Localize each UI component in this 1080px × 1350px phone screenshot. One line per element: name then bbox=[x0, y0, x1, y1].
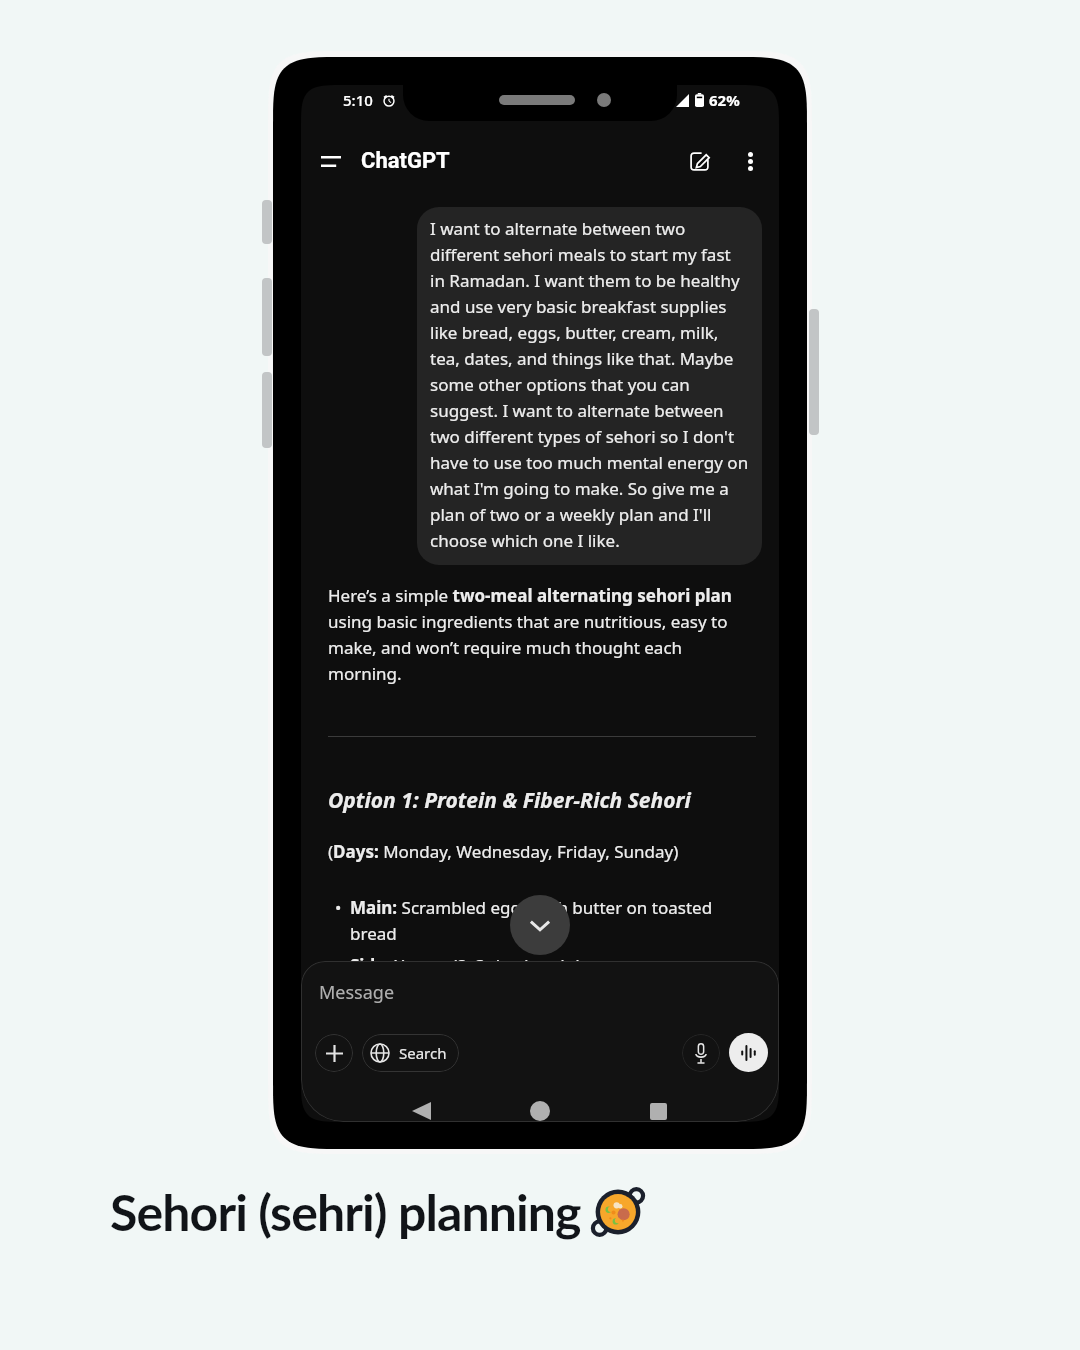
staticText: Sehori (sehri) planning bbox=[110, 1182, 581, 1242]
button[interactable]: Add attachment bbox=[315, 1034, 353, 1072]
staticText: Option 1: Protein & Fiber-Rich Sehori bbox=[328, 786, 691, 815]
staticText: Side: Yogurt (2–3 tbsp) and dates bbox=[350, 954, 614, 977]
staticText: Main: Scrambled eggs with butter on toas… bbox=[350, 896, 756, 945]
staticText: I want to alternate between two differen… bbox=[430, 217, 749, 552]
staticText: Message bbox=[319, 980, 395, 1005]
staticText: • bbox=[335, 896, 342, 919]
staticText: Search bbox=[399, 1043, 447, 1063]
button[interactable]: Home bbox=[524, 1098, 556, 1122]
staticText: (Days: Monday, Wednesday, Friday, Sunday… bbox=[328, 840, 679, 863]
button[interactable]: Back bbox=[405, 1098, 437, 1122]
button[interactable]: More options bbox=[734, 145, 766, 177]
staticText: 5:10 bbox=[343, 90, 373, 110]
button[interactable]: Scroll to bottom bbox=[510, 895, 570, 955]
staticText: Here’s a simple two-meal alternating seh… bbox=[328, 584, 756, 685]
button[interactable]: Dictate bbox=[682, 1034, 720, 1072]
button[interactable]: Recent apps bbox=[642, 1098, 674, 1122]
button[interactable]: Search bbox=[362, 1034, 459, 1072]
button[interactable]: Voice mode bbox=[729, 1033, 768, 1072]
staticText: 62% bbox=[709, 90, 740, 110]
staticText: ChatGPT bbox=[361, 148, 450, 174]
button[interactable]: Menu bbox=[312, 142, 350, 180]
staticText: • bbox=[335, 954, 342, 977]
button[interactable]: New chat bbox=[680, 142, 718, 180]
